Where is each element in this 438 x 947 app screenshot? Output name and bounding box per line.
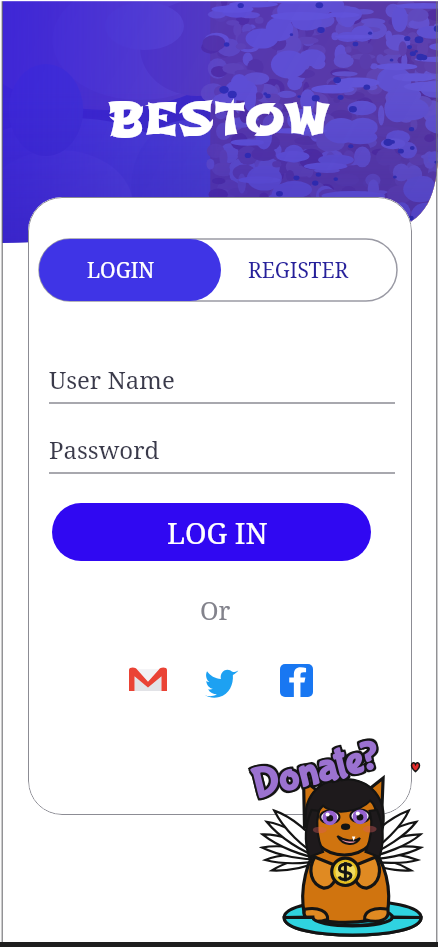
staticText: LOGIN	[87, 256, 155, 285]
staticText: Donate?	[246, 730, 384, 809]
button[interactable]: Sign in with Google	[128, 660, 168, 700]
staticText: Donate?	[249, 733, 387, 812]
button[interactable]: Donate	[249, 734, 434, 939]
staticText: User Name	[49, 363, 175, 396]
button[interactable]: LOGIN	[39, 239, 221, 301]
staticText: Donate?	[245, 734, 383, 813]
staticText: REGISTER	[248, 256, 349, 285]
button[interactable]: Sign in with Twitter	[202, 660, 242, 700]
button[interactable]: Sign in with Facebook	[276, 660, 316, 700]
staticText: Donate?	[245, 732, 383, 811]
staticText: Donate?	[247, 734, 385, 813]
staticText: LOG IN	[167, 513, 268, 552]
staticText: Donate?	[248, 729, 386, 808]
staticText: Donate?	[249, 731, 387, 810]
staticText: Or	[200, 593, 231, 627]
button[interactable]: LOG IN	[52, 503, 371, 561]
staticText: BESTOW	[108, 92, 331, 149]
staticText: Password	[49, 433, 160, 466]
staticText: Donate?	[247, 732, 385, 811]
button[interactable]: REGISTER	[221, 239, 397, 301]
staticText: Donate?	[244, 730, 382, 809]
